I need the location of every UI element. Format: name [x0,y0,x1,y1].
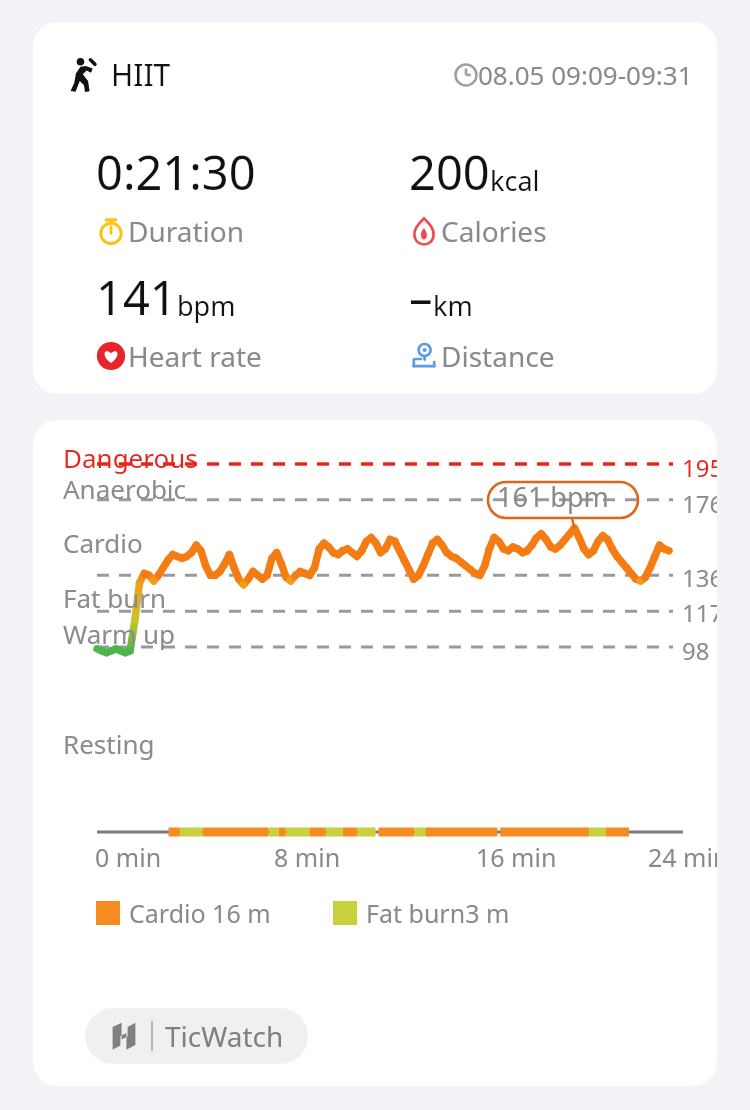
staticText: 200 [409,140,490,204]
button[interactable]: 141 [66,265,270,375]
staticText: Anaerobic [63,471,187,506]
staticText: 0:21:30 [96,140,256,204]
staticText: Warm up [63,616,176,651]
staticText: 176 [682,487,717,520]
button[interactable]: – [379,265,563,375]
staticText: Cardio 16 m [129,896,271,930]
button[interactable]: 200 [379,140,555,250]
staticText: 0 min [95,840,162,874]
button[interactable]: Dangerous [33,420,717,1086]
staticText: 8 min [274,840,341,874]
staticText: 08.05 09:09-09:31 [478,57,693,92]
staticText: – [409,265,433,329]
staticText: TicWatch [165,1017,284,1055]
staticText: Heart rate [128,337,262,375]
staticText: Fat burn [63,580,167,615]
button[interactable]: Running [33,22,717,394]
other: Running [63,56,101,94]
staticText: Calories [441,212,547,250]
staticText: 141 [96,265,177,329]
other: TicWatch logo [109,1021,139,1051]
staticText: 24 min [648,840,717,874]
staticText: Dangerous [63,440,198,475]
staticText: km [433,287,473,324]
staticText: 161 bpm [497,478,609,515]
staticText: kcal [490,162,540,199]
button[interactable]: TicWatch logo [85,1008,308,1064]
staticText: 136 [682,561,717,594]
staticText: 98 [682,634,710,667]
staticText: Distance [441,337,555,375]
staticText: 195 [682,451,717,484]
staticText: Cardio [63,525,143,560]
staticText: bpm [177,287,236,324]
staticText: 16 min [476,840,557,874]
button[interactable]: 0:21:30 [66,140,264,250]
staticText: Resting [63,726,155,761]
staticText: Fat burn3 m [366,896,510,930]
staticText: HIIT [111,54,171,95]
staticText: 117 [682,596,717,629]
staticText: Duration [128,212,245,250]
